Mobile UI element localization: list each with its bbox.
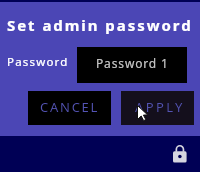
- staticText: Set admin password: [7, 15, 193, 35]
- staticText: CANCEL: [40, 98, 100, 116]
- staticText: APPLY: [135, 98, 185, 116]
- staticText: Password: [7, 54, 69, 70]
- button[interactable]: CANCEL: [28, 91, 111, 125]
- button[interactable]: Password 1: [77, 47, 187, 83]
- other: Locked: [171, 143, 191, 163]
- staticText: Password 1: [96, 55, 169, 71]
- button[interactable]: APPLY: [121, 91, 194, 125]
